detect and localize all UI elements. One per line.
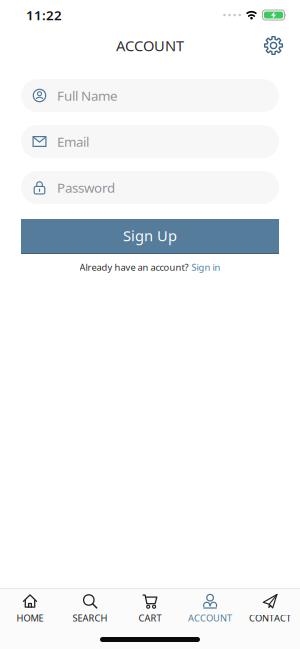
staticText: Full Name	[57, 87, 118, 104]
button[interactable]: CART	[120, 594, 180, 624]
staticText: HOME	[16, 612, 43, 624]
button[interactable]: CONTACT	[240, 594, 300, 624]
button[interactable]: Sign in	[191, 261, 220, 273]
button[interactable]: SEARCH	[60, 594, 120, 624]
staticText: Email	[57, 133, 89, 150]
button[interactable]: Email	[21, 125, 279, 158]
staticText: ACCOUNT	[116, 36, 184, 55]
staticText: CART	[138, 612, 161, 624]
staticText: Password	[57, 179, 115, 196]
staticText: CONTACT	[249, 612, 291, 624]
button[interactable]: HOME	[0, 594, 60, 624]
button[interactable]: Password	[21, 171, 279, 204]
staticText: SEARCH	[72, 612, 107, 624]
staticText: Already have an account?	[79, 261, 188, 273]
staticText: Sign in	[191, 261, 220, 273]
button[interactable]: ACCOUNT	[180, 594, 240, 624]
staticText: Sign Up	[123, 226, 177, 245]
button[interactable]: Settings	[264, 36, 283, 55]
button[interactable]: Full Name	[21, 79, 279, 112]
staticText: ACCOUNT	[188, 612, 232, 624]
button[interactable]: Sign Up	[21, 219, 279, 254]
staticText: 11:22	[26, 6, 62, 24]
